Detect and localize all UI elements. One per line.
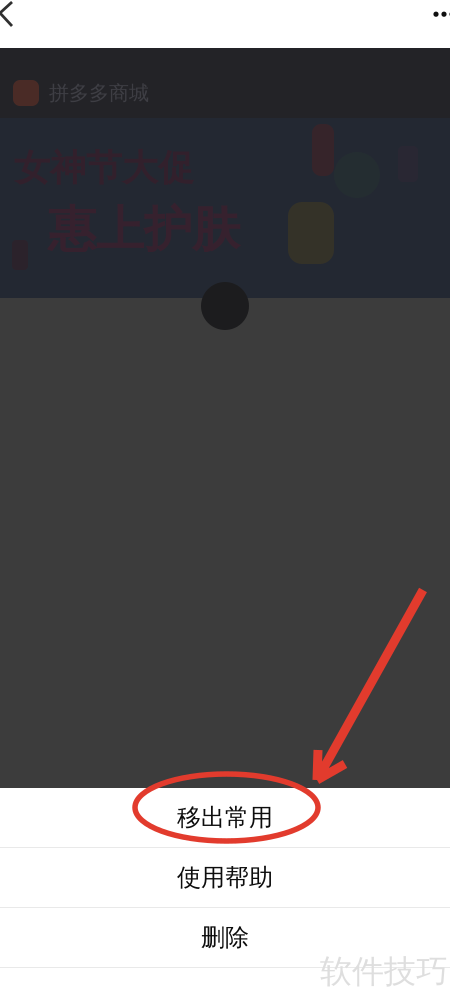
button[interactable]: 使用帮助 bbox=[0, 848, 450, 907]
button[interactable]: More options bbox=[427, 0, 450, 40]
staticText: 惠上护肤 bbox=[48, 200, 240, 259]
staticText: 拼多多商城 bbox=[49, 81, 149, 105]
staticText: 软件技巧 bbox=[320, 952, 448, 991]
staticText: 删除 bbox=[201, 923, 249, 952]
button[interactable]: Back bbox=[0, 0, 30, 40]
staticText: 移出常用 bbox=[177, 803, 273, 832]
staticText: 女神节大促 bbox=[14, 146, 194, 190]
button[interactable]: 删除 bbox=[0, 908, 450, 967]
staticText: 使用帮助 bbox=[177, 863, 273, 892]
button[interactable]: 移出常用 bbox=[0, 788, 450, 847]
